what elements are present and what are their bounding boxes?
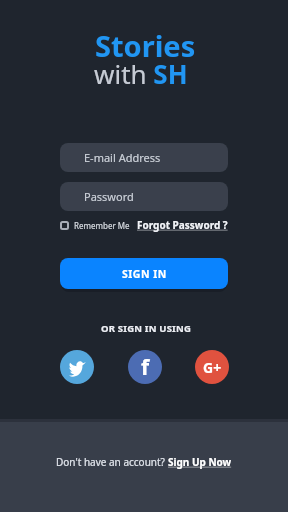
button[interactable]: f xyxy=(128,350,162,384)
button[interactable]: Password xyxy=(60,182,228,211)
staticText: Password xyxy=(84,189,134,204)
button[interactable]: Remember Me xyxy=(60,220,130,231)
staticText: Remember Me xyxy=(74,220,130,231)
staticText: G+ xyxy=(203,358,222,377)
staticText: OR SIGN IN USING xyxy=(101,322,192,335)
staticText: f xyxy=(141,353,150,382)
staticText: with SH xyxy=(94,56,188,91)
button[interactable]: Don't have an account? xyxy=(56,452,232,472)
staticText: Don't have an account? xyxy=(56,455,168,469)
staticText: SIGN IN xyxy=(122,267,167,281)
button[interactable]: E-mail Address xyxy=(60,143,228,172)
button[interactable]: G+ xyxy=(195,350,229,384)
button[interactable]: Forgot Password ? xyxy=(137,218,228,232)
button[interactable] xyxy=(60,350,94,384)
staticText: E-mail Address xyxy=(84,150,161,165)
button[interactable]: SIGN IN xyxy=(60,258,228,289)
staticText: Sign Up Now xyxy=(168,455,232,469)
staticText: Stories xyxy=(95,26,196,65)
